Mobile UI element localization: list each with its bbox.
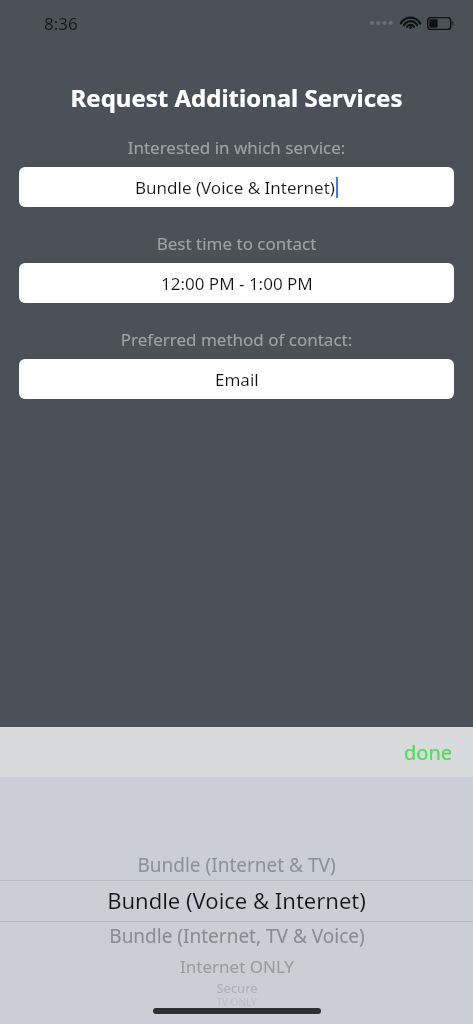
button[interactable]: Bundle (Internet, TV & Voice) xyxy=(0,921,473,951)
staticText: Request Additional Services xyxy=(0,81,473,114)
button[interactable]: Bundle (Voice & Internet) xyxy=(0,885,473,915)
staticText: Best time to contact xyxy=(0,232,473,255)
staticText: 12:00 PM - 1:00 PM xyxy=(161,272,313,295)
staticText: TV ONLY xyxy=(216,995,257,1009)
staticText: Interested in which service: xyxy=(0,136,473,159)
staticText: Bundle (Voice & Internet) xyxy=(135,176,335,199)
staticText: Bundle (Internet & TV) xyxy=(137,852,336,878)
staticText: Bundle (Internet, TV & Voice) xyxy=(109,923,365,949)
button[interactable]: done xyxy=(384,730,473,775)
button[interactable]: Email xyxy=(19,359,454,399)
staticText: Secure xyxy=(216,979,258,997)
button[interactable]: Bundle (Internet & TV) xyxy=(0,850,473,880)
staticText: Internet ONLY xyxy=(180,955,294,978)
other: Home indicator xyxy=(153,1008,321,1014)
button[interactable]: 12:00 PM - 1:00 PM xyxy=(19,263,454,303)
button[interactable]: TV ONLY xyxy=(0,987,473,1017)
button[interactable]: Bundle (Voice & Internet) xyxy=(19,167,454,207)
button[interactable]: Internet ONLY xyxy=(0,951,473,981)
staticText: Bundle (Voice & Internet) xyxy=(107,885,366,915)
staticText: 8:36 xyxy=(44,12,78,35)
staticText: Preferred method of contact: xyxy=(0,328,473,351)
staticText: Email xyxy=(215,368,259,391)
staticText: done xyxy=(404,739,453,766)
